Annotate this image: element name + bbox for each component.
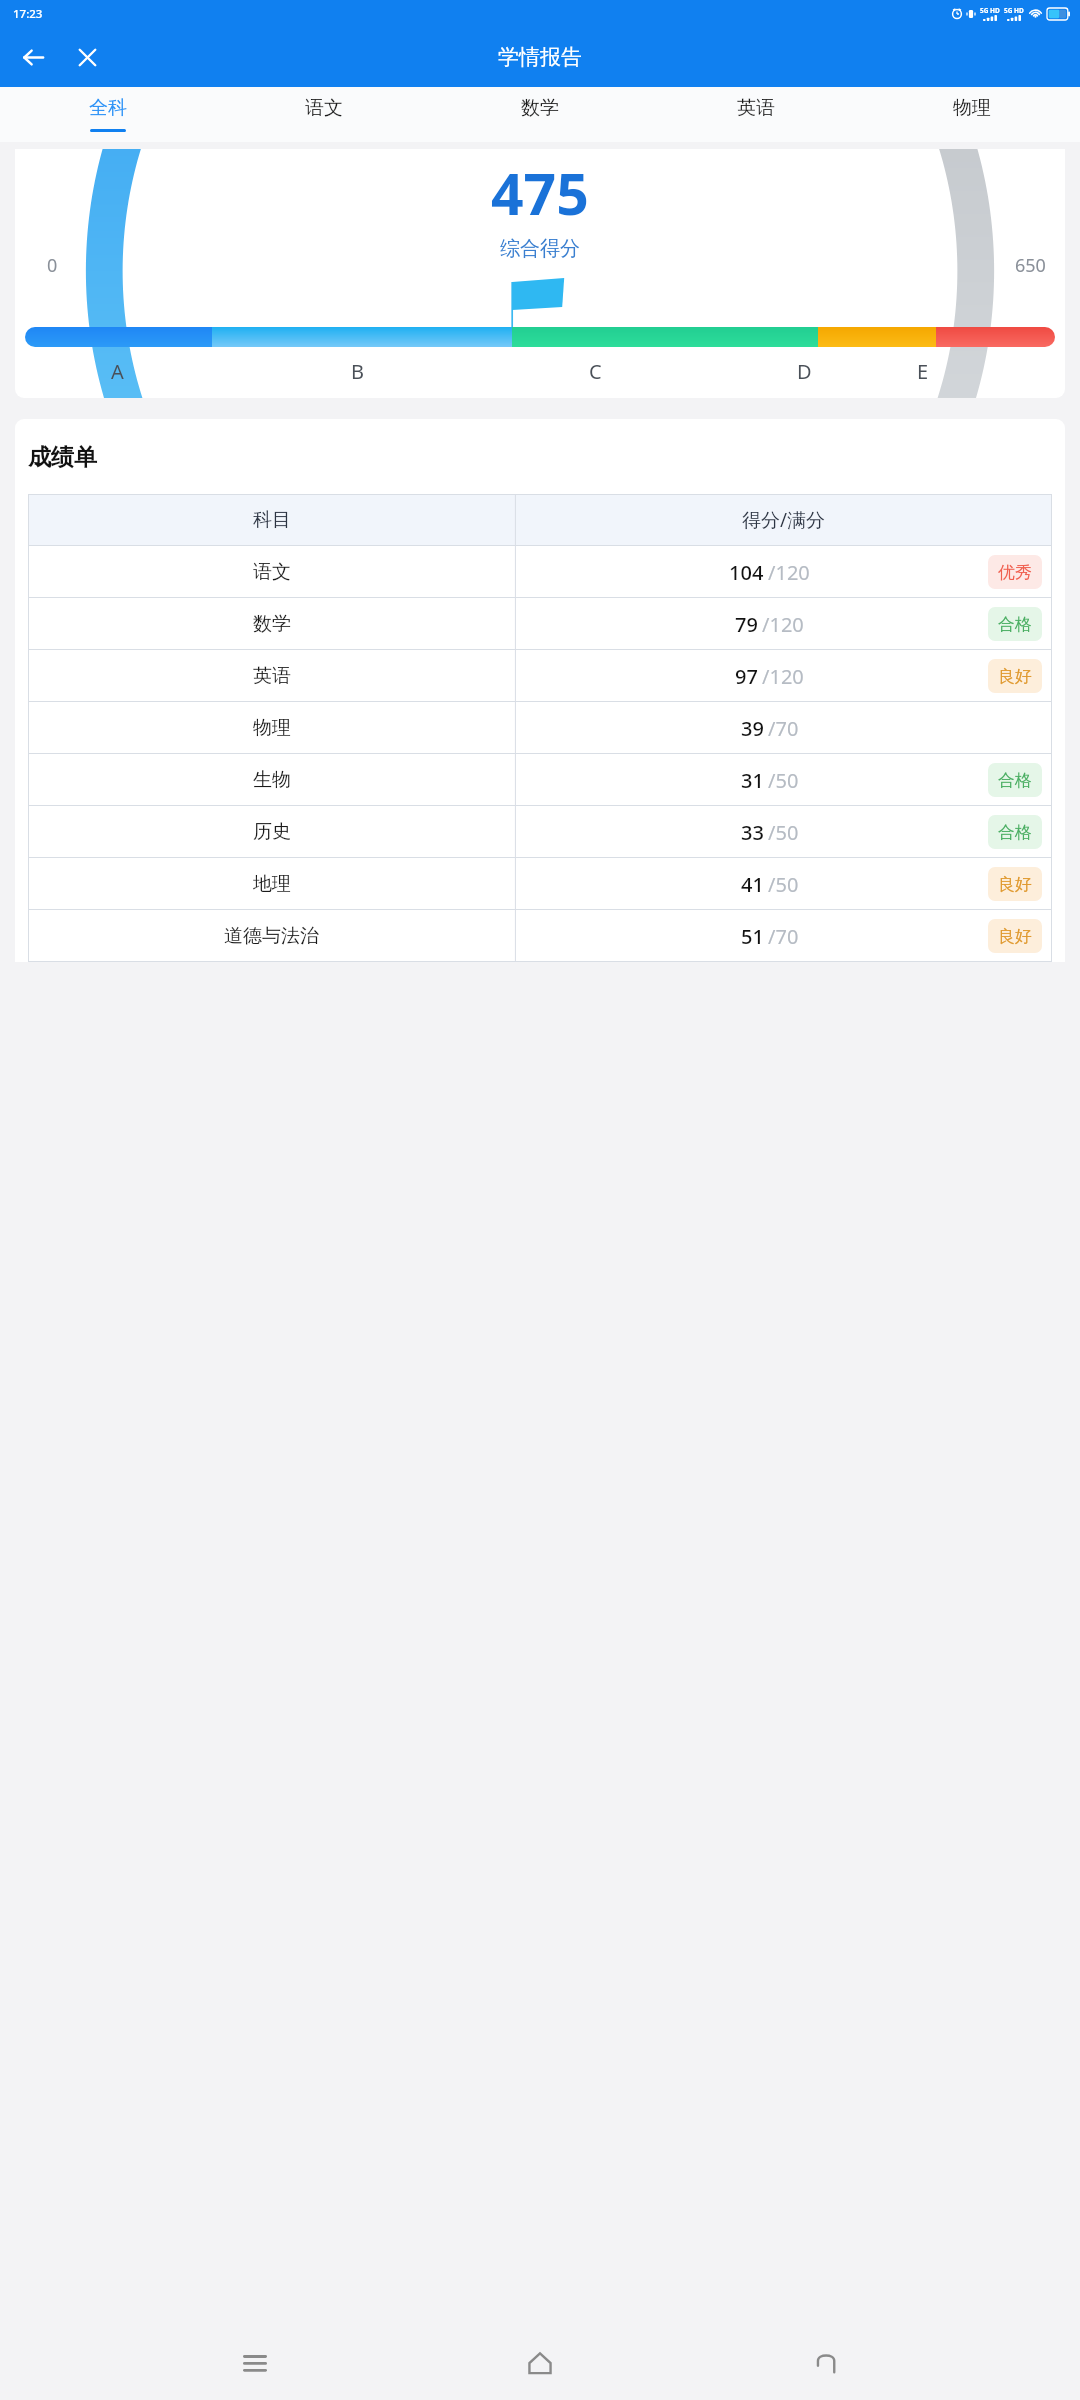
- button[interactable]: 全科: [0, 87, 216, 142]
- staticText: /50: [768, 871, 799, 898]
- button[interactable]: Close: [66, 36, 108, 78]
- staticText: 39: [741, 715, 764, 742]
- button[interactable]: 物理: [864, 87, 1080, 142]
- staticText: 成绩单: [28, 443, 97, 472]
- staticText: 良好: [998, 874, 1032, 895]
- staticText: 物理: [253, 716, 291, 740]
- button[interactable]: 地理: [28, 858, 1052, 910]
- staticText: 0: [47, 253, 58, 278]
- staticText: 良好: [998, 926, 1032, 947]
- staticText: 79: [735, 611, 758, 638]
- staticText: A: [111, 358, 124, 385]
- staticText: /70: [768, 923, 799, 950]
- button[interactable]: Back: [795, 2333, 855, 2393]
- button[interactable]: 物理: [28, 702, 1052, 754]
- staticText: 合格: [998, 770, 1032, 791]
- staticText: /120: [762, 611, 804, 638]
- staticText: 5G HD: [1004, 6, 1024, 15]
- staticText: C: [589, 358, 602, 385]
- button[interactable]: 道德与法治: [28, 910, 1052, 962]
- staticText: E: [917, 358, 929, 385]
- staticText: 31: [741, 767, 764, 794]
- staticText: 英语: [253, 664, 291, 688]
- staticText: 得分/满分: [742, 507, 826, 533]
- staticText: 科目: [253, 508, 291, 532]
- button[interactable]: Recent apps: [225, 2333, 285, 2393]
- staticText: 地理: [253, 872, 291, 896]
- staticText: 英语: [737, 96, 775, 120]
- staticText: 道德与法治: [224, 924, 319, 948]
- staticText: 全科: [89, 96, 127, 120]
- staticText: 51: [741, 923, 764, 950]
- staticText: 语文: [253, 560, 291, 584]
- staticText: 综合得分: [500, 236, 580, 261]
- staticText: /120: [762, 663, 804, 690]
- staticText: /50: [768, 819, 799, 846]
- staticText: /120: [768, 559, 810, 586]
- button[interactable]: 英语: [28, 650, 1052, 702]
- button[interactable]: Back: [12, 36, 54, 78]
- staticText: 5G HD: [980, 6, 1000, 15]
- staticText: 历史: [253, 820, 291, 844]
- staticText: 97: [735, 663, 758, 690]
- staticText: 良好: [998, 666, 1032, 687]
- button[interactable]: 历史: [28, 806, 1052, 858]
- staticText: 语文: [305, 96, 343, 120]
- staticText: 数学: [253, 612, 291, 636]
- button[interactable]: 数学: [28, 598, 1052, 650]
- staticText: 优秀: [998, 562, 1032, 583]
- staticText: 104: [729, 559, 764, 586]
- button[interactable]: 语文: [216, 87, 432, 142]
- staticText: /70: [768, 715, 799, 742]
- button[interactable]: 英语: [648, 87, 864, 142]
- staticText: D: [797, 358, 812, 385]
- button[interactable]: 语文: [28, 546, 1052, 598]
- button[interactable]: Home: [510, 2333, 570, 2393]
- staticText: 650: [1015, 253, 1046, 278]
- staticText: 17:23: [13, 6, 43, 22]
- staticText: 合格: [998, 822, 1032, 843]
- staticText: 475: [491, 154, 589, 232]
- staticText: 33: [741, 819, 764, 846]
- staticText: 物理: [953, 96, 991, 120]
- staticText: /50: [768, 767, 799, 794]
- staticText: 生物: [253, 768, 291, 792]
- staticText: 合格: [998, 614, 1032, 635]
- staticText: 学情报告: [498, 44, 582, 70]
- staticText: B: [351, 358, 364, 385]
- staticText: 41: [741, 871, 764, 898]
- staticText: 数学: [521, 96, 559, 120]
- button[interactable]: 数学: [432, 87, 648, 142]
- button[interactable]: 生物: [28, 754, 1052, 806]
